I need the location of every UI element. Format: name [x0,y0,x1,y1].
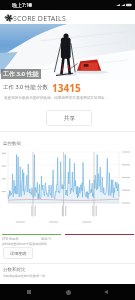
staticText: CPU 使用率 [2,237,19,241]
staticText: 表更高的分数表示更好的性能。结果使用官方基准测试方法得出。 [4,96,109,101]
button[interactable]: 共享 [46,110,92,126]
staticText: 监控数据 [3,141,21,147]
staticText: 晚上7:18 [12,2,32,9]
staticText: 工作 3.0 性能 分数 [3,83,49,91]
button[interactable]: Recent apps [19,284,39,300]
staticText: 分数和对比 [3,267,26,273]
staticText: 13415 [52,81,81,95]
staticText: 详细图表 [10,251,27,256]
staticText: 实时监控数据记录于基准测试期间 [2,242,47,246]
staticText: 共享 [64,115,75,122]
staticText: 工作 3.0 性能 [3,70,39,78]
button[interactable]: Back [0,12,10,22]
button[interactable]: Back [96,284,116,300]
staticText: SCORE DETAILS [13,14,67,24]
button[interactable]: Home [58,284,78,300]
staticText: 与其他设备的性能对比数据一览 [3,274,45,278]
staticText: 电池 ℃ [41,237,52,241]
button[interactable]: 详细图表 [3,247,33,259]
